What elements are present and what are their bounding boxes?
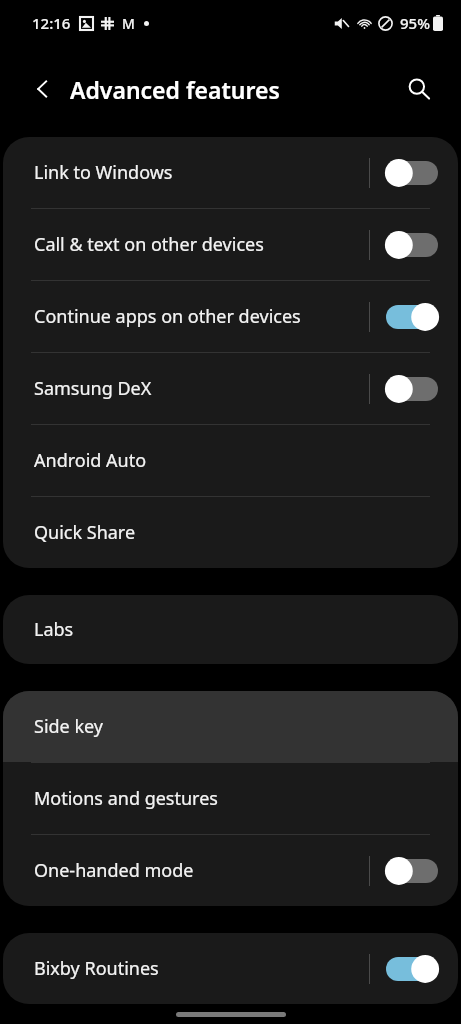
button[interactable]: Samsung DeX bbox=[3, 353, 458, 424]
staticText: Motions and gestures bbox=[34, 786, 438, 811]
button[interactable]: Back bbox=[22, 68, 64, 110]
staticText: Android Auto bbox=[34, 448, 438, 473]
staticText: Continue apps on other devices bbox=[34, 304, 369, 329]
staticText: 12:16 bbox=[32, 13, 71, 33]
button[interactable]: Labs bbox=[3, 595, 458, 664]
button[interactable]: Off bbox=[386, 856, 438, 886]
button[interactable]: Quick Share bbox=[3, 497, 458, 568]
button[interactable]: Side key bbox=[3, 691, 458, 762]
staticText: One-handed mode bbox=[34, 858, 369, 883]
button[interactable]: Call & text on other devices bbox=[3, 209, 458, 280]
button[interactable]: On bbox=[386, 302, 438, 332]
staticText: Call & text on other devices bbox=[34, 232, 369, 257]
button[interactable]: Bixby Routines bbox=[3, 933, 458, 1004]
staticText: Bixby Routines bbox=[34, 956, 369, 981]
staticText: Samsung DeX bbox=[34, 376, 369, 401]
staticText: Quick Share bbox=[34, 520, 438, 545]
button[interactable]: Off bbox=[386, 158, 438, 188]
staticText: Labs bbox=[34, 617, 438, 642]
button[interactable]: One-handed mode bbox=[3, 835, 458, 906]
button[interactable]: On bbox=[386, 954, 438, 984]
staticText: Advanced features bbox=[70, 74, 280, 105]
button[interactable]: Motions and gestures bbox=[3, 763, 458, 834]
staticText: Side key bbox=[34, 714, 438, 739]
button[interactable]: Off bbox=[386, 374, 438, 404]
button[interactable]: Link to Windows bbox=[3, 137, 458, 208]
button[interactable]: Android Auto bbox=[3, 425, 458, 496]
button[interactable]: Continue apps on other devices bbox=[3, 281, 458, 352]
staticText: 95% bbox=[400, 13, 430, 33]
staticText: Link to Windows bbox=[34, 160, 369, 185]
button[interactable]: Off bbox=[386, 230, 438, 260]
button[interactable]: Search bbox=[397, 67, 441, 111]
staticText: M bbox=[122, 14, 135, 33]
